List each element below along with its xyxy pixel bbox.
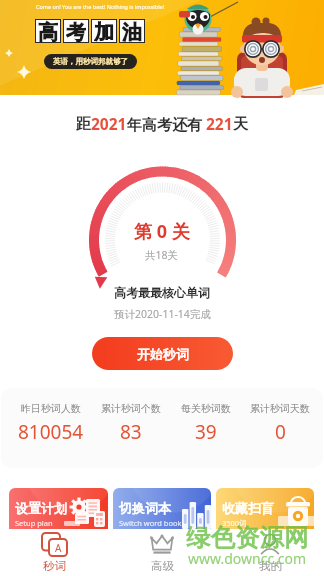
staticText: 第 0 关 xyxy=(134,219,190,244)
staticText: 我的 xyxy=(259,559,282,573)
button[interactable]: 每关秒词数 xyxy=(165,402,247,445)
staticText: 累计秒词天数 xyxy=(250,402,310,415)
staticText: 221 xyxy=(206,113,233,134)
button[interactable]: 昨日秒词人数 xyxy=(10,402,92,445)
staticText: 切换词本 xyxy=(119,500,171,516)
staticText: 加 xyxy=(94,20,114,42)
button[interactable]: 累计秒词个数 xyxy=(90,402,172,445)
button[interactable]: 累计秒词天数 xyxy=(239,402,321,445)
staticText: 油 xyxy=(122,20,142,42)
staticText: 高级 xyxy=(151,559,174,573)
staticText: 英语，用秒词邦就够了 xyxy=(53,57,128,66)
button[interactable]: 开始秒词 xyxy=(92,337,233,370)
staticText: 考 xyxy=(66,20,86,42)
staticText: www.downcc.com xyxy=(188,549,307,568)
staticText: 设置计划 xyxy=(15,500,67,516)
button[interactable]: 秒词 xyxy=(0,530,108,576)
staticText: 83 xyxy=(120,419,142,445)
staticText: 2021 xyxy=(91,113,127,134)
staticText: 天 xyxy=(233,115,248,134)
staticText: 3500词 xyxy=(222,518,247,528)
staticText: 高 xyxy=(38,20,58,42)
staticText: 0 xyxy=(275,419,286,445)
button[interactable]: 我的 xyxy=(216,530,324,576)
staticText: 每关秒词数 xyxy=(181,402,231,415)
staticText: 距 xyxy=(76,115,91,134)
staticText: A xyxy=(55,541,62,555)
staticText: 累计秒词个数 xyxy=(101,402,161,415)
button[interactable]: 高级 xyxy=(108,530,216,576)
staticText: 39 xyxy=(195,419,217,445)
staticText: Setup plan xyxy=(15,518,53,528)
button[interactable]: 切换词本 xyxy=(113,488,211,529)
staticText: 810054 xyxy=(18,419,84,445)
button[interactable]: 收藏扫盲 xyxy=(216,488,314,529)
staticText: 预计2020-11-14完成 xyxy=(114,307,211,321)
button[interactable]: 设置计划 xyxy=(9,488,108,529)
staticText: 共18关 xyxy=(145,248,179,262)
staticText: 开始秒词 xyxy=(137,346,189,362)
staticText: 年高考还有 xyxy=(127,114,206,134)
staticText: 绿色资源网 xyxy=(186,522,309,553)
staticText: 秒词 xyxy=(43,559,66,573)
staticText: 收藏扫盲 xyxy=(222,500,274,516)
staticText: 高考最最核心单词 xyxy=(114,285,210,300)
staticText: Switch word book xyxy=(119,518,182,528)
staticText: 昨日秒词人数 xyxy=(21,402,81,415)
staticText: Come on! You are the best! Nothing is im… xyxy=(36,3,165,10)
